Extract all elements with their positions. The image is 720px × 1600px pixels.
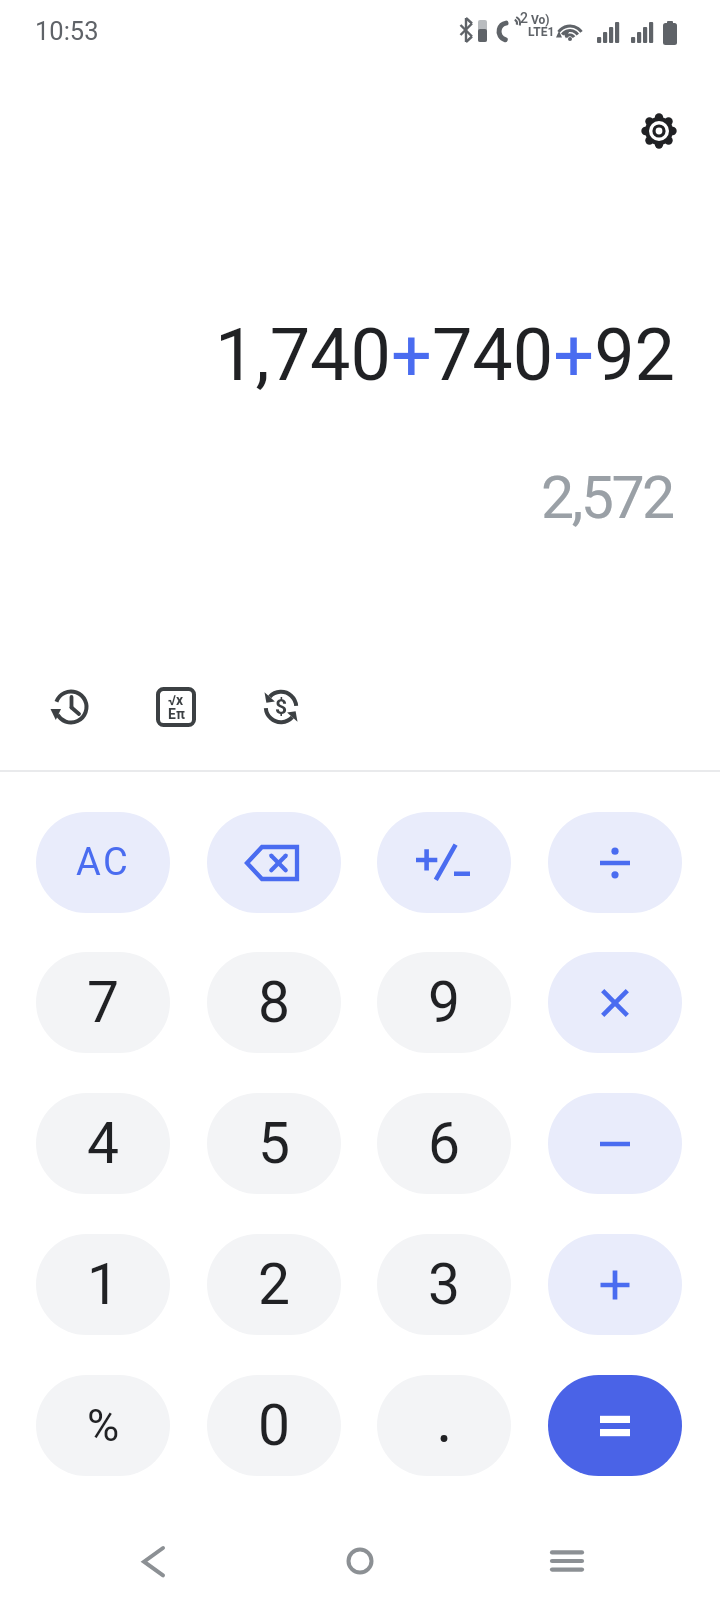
button[interactable] [548,812,682,913]
staticText: AC [76,840,131,885]
button[interactable] [377,812,511,913]
staticText: 4 [87,1110,120,1177]
staticText: 1,740+740+92 [215,313,676,397]
staticText: √x [168,692,184,708]
button[interactable] [543,1537,591,1585]
button[interactable] [635,107,683,155]
staticText: LTE1 [528,25,555,39]
button[interactable]: 4 [36,1093,170,1194]
staticText: 0 [258,1392,291,1459]
staticText: 8 [258,969,291,1036]
staticText: 2 [520,10,528,26]
button[interactable] [377,1375,511,1476]
staticText: Eπ [168,706,185,722]
button[interactable] [548,1375,682,1476]
button[interactable] [47,683,95,731]
staticText: 7 [87,969,120,1036]
button[interactable]: 8 [207,952,341,1053]
button[interactable] [128,1537,176,1585]
staticText: % [87,1400,120,1452]
button[interactable]: 6 [377,1093,511,1194]
button[interactable]: 0 [207,1375,341,1476]
button[interactable] [548,952,682,1053]
button[interactable]: $ [257,683,305,731]
staticText: Vo) [531,13,550,27]
button[interactable]: 2 [207,1234,341,1335]
staticText: 9 [428,969,461,1036]
button[interactable]: AC [36,812,170,913]
staticText: 2,572 [541,463,673,532]
button[interactable]: 3 [377,1234,511,1335]
staticText: 5 [258,1110,291,1177]
staticText: 3 [428,1251,461,1318]
staticText: $ [275,695,288,720]
button[interactable] [548,1093,682,1194]
staticText: 6 [428,1110,461,1177]
staticText: 2 [258,1251,291,1318]
button[interactable] [336,1537,384,1585]
button[interactable]: 9 [377,952,511,1053]
staticText: 1 [87,1251,120,1318]
button[interactable]: % [36,1375,170,1476]
button[interactable]: 7 [36,952,170,1053]
button[interactable]: √x [152,683,200,731]
staticText: 10:53 [35,16,99,46]
button[interactable] [548,1234,682,1335]
button[interactable] [207,812,341,913]
button[interactable]: 1 [36,1234,170,1335]
button[interactable]: 5 [207,1093,341,1194]
